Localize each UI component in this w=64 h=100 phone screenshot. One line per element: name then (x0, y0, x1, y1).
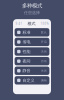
staticText: 标准 (22, 30, 30, 35)
staticText: 9:41 (15, 22, 22, 25)
button[interactable]: 省电 (15, 38, 49, 46)
staticText: 自动 (41, 59, 47, 63)
staticText: 关闭 (41, 69, 47, 72)
staticText: 关闭 (41, 50, 47, 53)
button[interactable]: 性能 (15, 47, 49, 56)
staticText: 夜间 (22, 59, 30, 64)
staticText: 100% (40, 22, 48, 25)
staticText: 任您选择 (24, 10, 40, 15)
button[interactable]: 静音 (15, 67, 49, 75)
staticText: 多种模式 (22, 2, 42, 9)
button[interactable]: 夜间 (15, 57, 49, 65)
staticText: 静音 (22, 68, 30, 73)
staticText: 自定义 (22, 78, 34, 83)
staticText: 模式 (27, 21, 35, 26)
staticText: 性能 (22, 49, 30, 54)
staticText: 省电 (22, 39, 30, 44)
staticText: 开启 (41, 40, 47, 44)
staticText: 默认 (41, 31, 47, 34)
button[interactable]: 标准 (15, 28, 49, 37)
button[interactable]: 自定义 (15, 76, 49, 85)
staticText: 编辑 (41, 79, 47, 82)
